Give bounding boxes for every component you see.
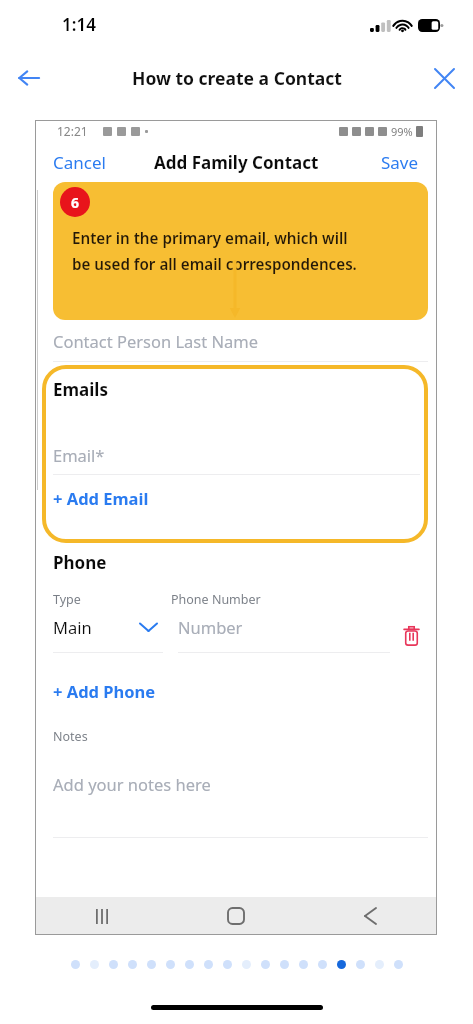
staticText: Notes [53,728,88,745]
staticText: 12:21 [57,123,88,139]
staticText: Add Family Contact [154,151,319,174]
staticText: Type [53,591,171,608]
staticText: 99% [391,124,413,139]
button[interactable]: + Add Phone [53,680,156,702]
staticText: + Add Phone [53,680,156,702]
button[interactable]: Back [10,59,48,97]
staticText: Number [178,616,243,638]
button[interactable]: Save [381,151,419,174]
button[interactable]: Close [425,59,463,97]
staticText: Phone [53,551,107,574]
staticText: Contact Person Last Name [53,330,259,352]
button[interactable]: Delete phone [394,618,428,652]
staticText: Enter in the primary email, which will b… [72,228,357,274]
staticText: Phone Number [171,591,261,608]
staticText: How to create a Contact [132,66,342,90]
staticText: Emails [53,378,108,401]
staticText: Save [381,151,419,174]
staticText: Cancel [53,151,106,174]
staticText: Email* [53,444,105,466]
button[interactable]: Home [169,897,303,935]
button[interactable]: Cancel [53,151,106,174]
button[interactable]: + Add Email [53,487,149,509]
staticText: 1:14 [62,13,96,36]
staticText: + Add Email [53,487,149,509]
staticText: Main [53,616,92,638]
button[interactable]: Recents [35,897,169,935]
button[interactable]: Back [303,897,437,935]
staticText: 6 [71,193,80,212]
button[interactable]: Main [53,616,163,653]
staticText: Add your notes here [53,773,211,795]
